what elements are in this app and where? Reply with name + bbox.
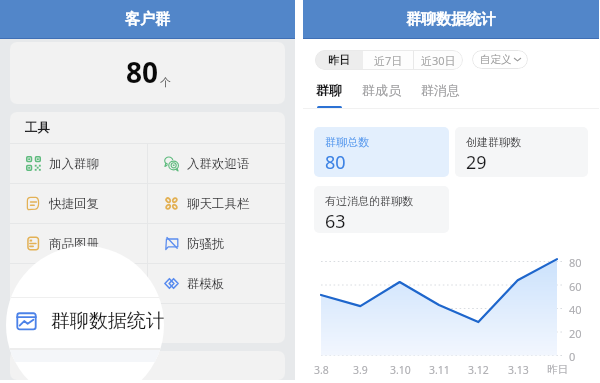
button[interactable]: 群成员 <box>362 82 401 109</box>
staticText: 近30日 <box>421 53 456 68</box>
staticText: 63 <box>325 209 346 233</box>
button[interactable]: 近7日 <box>363 50 413 70</box>
staticText: 工具 <box>25 120 50 136</box>
button[interactable] <box>148 304 285 343</box>
staticText: 80 <box>325 150 346 175</box>
button[interactable]: 群消息 <box>421 82 460 109</box>
button[interactable]: 群发助手 <box>10 264 147 303</box>
staticText: 入群欢迎语 <box>187 156 250 172</box>
button[interactable]: 近30日 <box>414 50 463 70</box>
staticText: 3.13 <box>508 363 529 377</box>
button[interactable]: 商品图册 <box>10 224 147 263</box>
staticText: 群聊 <box>316 82 342 98</box>
staticText: 群聊数据统计 <box>49 316 124 332</box>
button[interactable]: 加入群聊 <box>10 144 147 183</box>
button[interactable]: 创建群聊数 <box>455 127 588 177</box>
button[interactable]: 群聊总数 <box>314 127 449 177</box>
staticText: 40 <box>569 302 582 317</box>
staticText: 防骚扰 <box>187 236 225 252</box>
staticText: 3.12 <box>468 363 489 377</box>
staticText: 60 <box>569 279 582 294</box>
staticText: 3.11 <box>429 363 450 377</box>
staticText: 20 <box>569 326 582 341</box>
staticText: 群消息 <box>421 82 460 98</box>
button[interactable]: 入群欢迎语 <box>148 144 285 183</box>
staticText: 昨日 <box>328 53 350 67</box>
staticText: 快捷回复 <box>49 196 99 212</box>
staticText: 商品图册 <box>49 236 99 252</box>
button[interactable]: 群聊数据统计 <box>15 298 164 344</box>
staticText: 3.10 <box>390 363 411 377</box>
staticText: 群聊数据统计 <box>51 309 164 333</box>
staticText: 创建群聊数 <box>466 135 521 149</box>
staticText: 客户群 <box>125 10 170 29</box>
staticText: 80 <box>569 255 582 270</box>
button[interactable]: 聊天工具栏 <box>148 184 285 223</box>
staticText: 昨日 <box>547 363 568 376</box>
button[interactable]: 有过消息的群聊数 <box>314 186 449 233</box>
button[interactable]: 防骚扰 <box>148 224 285 263</box>
staticText: 29 <box>466 150 487 175</box>
staticText: 3.9 <box>353 363 368 377</box>
staticText: 群成员 <box>362 82 401 98</box>
staticText: 聊天工具栏 <box>187 196 250 212</box>
staticText: 自定义 <box>480 53 512 66</box>
staticText: 近7日 <box>374 53 403 68</box>
staticText: 群聊数据统计 <box>406 10 496 29</box>
button[interactable]: 群聊 <box>316 82 342 109</box>
button[interactable]: 快捷回复 <box>10 184 147 223</box>
staticText: 个 <box>160 75 171 89</box>
button[interactable]: 群聊数据统计 <box>10 304 147 343</box>
staticText: 有过消息的群聊数 <box>325 194 413 208</box>
staticText: 0 <box>569 349 576 364</box>
button[interactable]: 昨日 <box>315 50 363 70</box>
staticText: 群聊总数 <box>325 135 369 149</box>
button[interactable]: 群模板 <box>148 264 285 303</box>
staticText: 加入群聊 <box>49 156 99 172</box>
staticText: 3.8 <box>314 363 329 377</box>
staticText: 群模板 <box>187 276 225 292</box>
button[interactable]: 自定义 <box>472 50 528 69</box>
staticText: 80 <box>126 53 159 91</box>
